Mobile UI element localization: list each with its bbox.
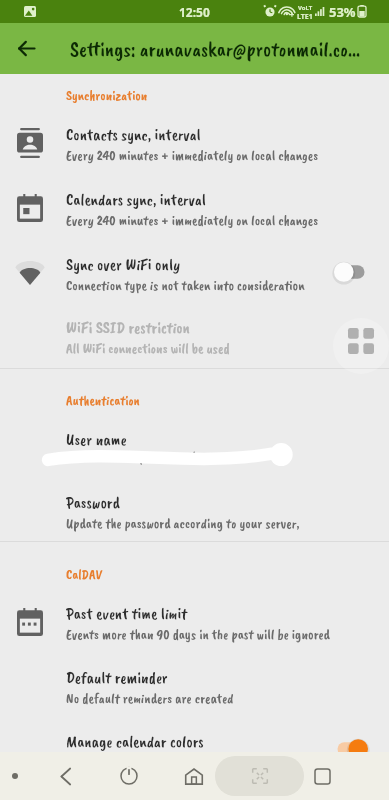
staticText: Events more than 90 days in the past wil… bbox=[66, 625, 330, 643]
staticText: 53% bbox=[329, 3, 356, 21]
button[interactable]: Apps bbox=[333, 318, 389, 374]
staticText: Password bbox=[66, 492, 120, 513]
staticText: arunavaskar@protonmail.com bbox=[66, 447, 219, 465]
staticText: Every 240 minutes + immediately on local… bbox=[66, 146, 319, 164]
staticText: Authentication bbox=[66, 392, 140, 410]
button[interactable]: Back bbox=[42, 752, 90, 800]
button[interactable]: Power bbox=[105, 752, 153, 800]
button[interactable]: Manage calendar colors bbox=[0, 725, 389, 783]
staticText: 12:50 bbox=[179, 4, 210, 20]
button[interactable]: On bbox=[325, 734, 371, 764]
staticText: Manage calendar colors bbox=[66, 731, 204, 752]
staticText: No default reminders are created bbox=[66, 689, 234, 707]
button[interactable]: Password bbox=[0, 486, 389, 544]
staticText: Update the password according to your se… bbox=[66, 514, 300, 532]
button[interactable]: Indicator bbox=[0, 752, 39, 800]
button[interactable]: Default reminder bbox=[0, 661, 389, 719]
button[interactable]: Back bbox=[0, 23, 52, 74]
staticText: Every 240 minutes + immediately on local… bbox=[66, 211, 319, 229]
staticText: VoLT bbox=[298, 4, 313, 12]
button[interactable]: User name bbox=[0, 423, 389, 481]
staticText: User name bbox=[66, 429, 127, 450]
staticText: LTE1 bbox=[297, 12, 313, 22]
button[interactable]: WiFi SSID restriction bbox=[0, 311, 389, 369]
staticText: Synchronization bbox=[66, 87, 148, 105]
button[interactable]: Contacts sync, interval bbox=[0, 118, 389, 176]
button[interactable]: Recents bbox=[298, 752, 346, 800]
staticText: CalDAV bbox=[66, 566, 103, 584]
button[interactable]: Screenshot bbox=[215, 756, 304, 796]
staticText: Settings: arunavaskar@protonmail.co… bbox=[70, 36, 360, 62]
staticText: Past event time limit bbox=[66, 603, 188, 624]
staticText: Default reminder bbox=[66, 667, 168, 688]
button[interactable]: Off bbox=[325, 257, 371, 287]
button[interactable]: Sync over WiFi only bbox=[0, 248, 389, 306]
button[interactable]: Past event time limit bbox=[0, 597, 389, 655]
button[interactable]: Home bbox=[170, 752, 218, 800]
staticText: Sync over WiFi only bbox=[66, 254, 180, 275]
staticText: Calendars sync, interval bbox=[66, 189, 206, 210]
button[interactable]: Calendars sync, interval bbox=[0, 183, 389, 241]
staticText: All WiFi connections will be used bbox=[66, 339, 230, 357]
staticText: WiFi SSID restriction bbox=[66, 317, 190, 338]
staticText: Contacts sync, interval bbox=[66, 124, 201, 145]
staticText: Connection type is not taken into consid… bbox=[66, 276, 305, 294]
